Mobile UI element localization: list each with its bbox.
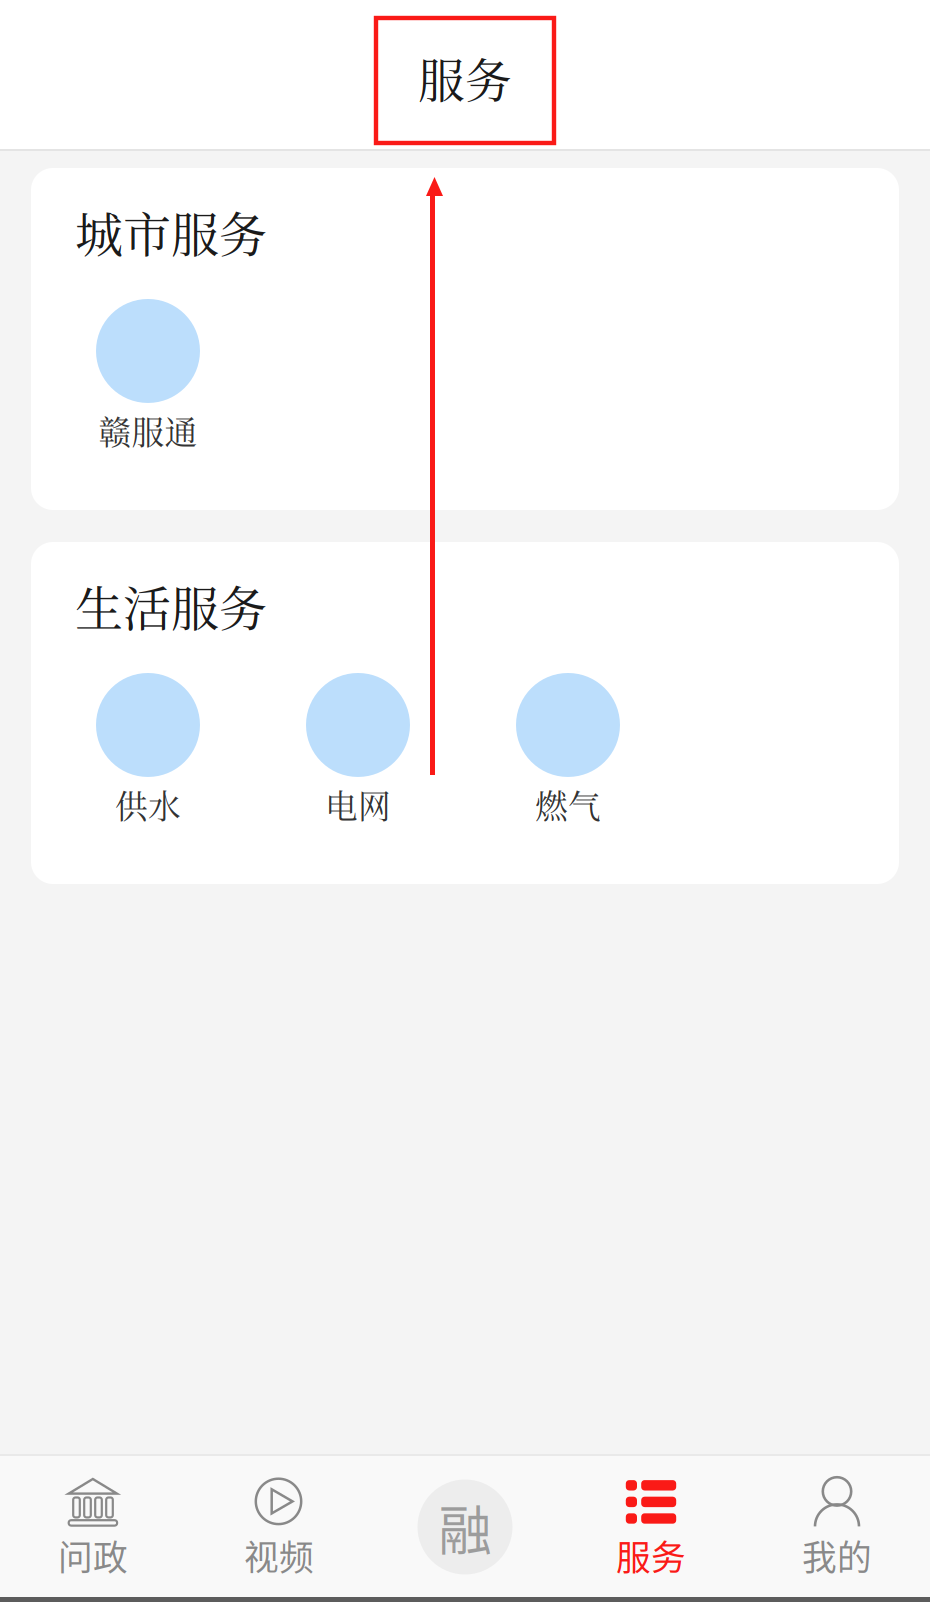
button[interactable]: 燃气 (463, 673, 673, 828)
button[interactable]: 我的 (744, 1447, 930, 1602)
staticText: 我的 (802, 1530, 872, 1581)
staticText: 视频 (244, 1530, 314, 1581)
staticText: 融 (438, 1488, 491, 1566)
button[interactable]: 服务 (558, 1447, 744, 1602)
button[interactable]: 视频 (186, 1447, 372, 1602)
staticText: 问政 (58, 1530, 128, 1581)
staticText: 燃气 (535, 781, 601, 828)
staticText: 城市服务 (75, 197, 267, 266)
button[interactable]: 电网 (253, 673, 463, 828)
staticText: 服务 (616, 1530, 686, 1581)
button[interactable]: 赣服通 (43, 299, 253, 454)
staticText: 供水 (115, 781, 181, 828)
staticText: 赣服通 (98, 407, 197, 454)
staticText: 生活服务 (75, 571, 267, 640)
button[interactable]: 问政 (0, 1447, 186, 1602)
button[interactable]: 供水 (43, 673, 253, 828)
button[interactable]: 融媒 (372, 1452, 558, 1598)
staticText: 服务 (418, 44, 512, 111)
staticText: 电网 (325, 781, 391, 828)
